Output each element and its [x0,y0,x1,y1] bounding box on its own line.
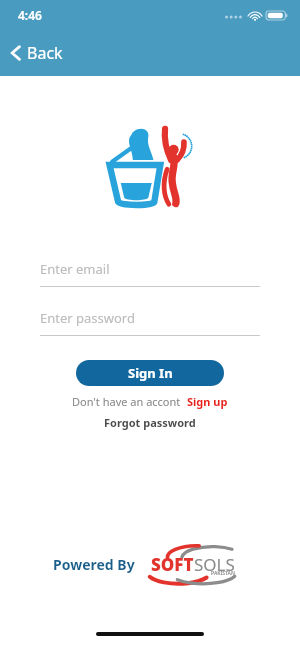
button[interactable]: Forgot password [104,415,196,430]
staticText: 4:46 [18,7,42,23]
staticText: PAKISTAN [211,570,235,577]
button[interactable]: Sign up [187,394,228,409]
button[interactable]: Back [0,30,77,76]
staticText: Forgot password [104,415,196,430]
button[interactable]: Enter email [40,260,260,287]
staticText: Don't have an accont [72,394,181,409]
button[interactable]: Sign In [76,360,224,386]
staticText: SOFT [151,553,194,576]
staticText: SOLS [194,553,235,576]
staticText: Enter password [40,309,135,327]
staticText: Sign up [187,394,228,409]
staticText: Powered By [53,555,135,574]
staticText: Enter email [40,260,110,278]
staticText: Back [27,42,63,64]
button[interactable]: Enter password [40,309,260,336]
staticText: Sign In [128,364,173,382]
